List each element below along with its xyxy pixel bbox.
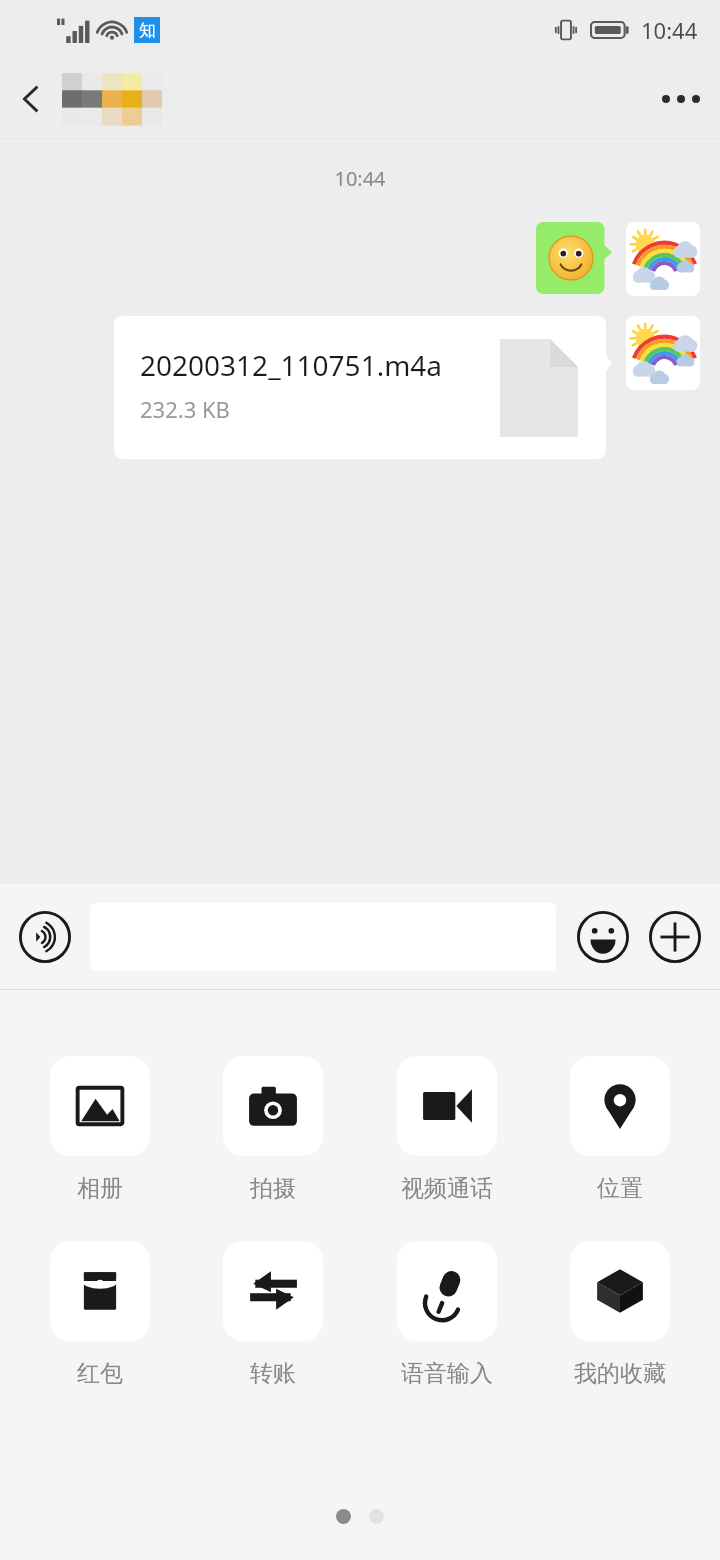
- button[interactable]: 视频通话: [373, 1056, 521, 1203]
- staticText: 拍摄: [250, 1174, 296, 1203]
- button[interactable]: 语音输入: [373, 1241, 521, 1388]
- button[interactable]: 转账: [199, 1241, 347, 1388]
- staticText: 10:44: [0, 165, 720, 192]
- staticText: 视频通话: [401, 1174, 493, 1203]
- button[interactable]: More: [644, 906, 706, 968]
- staticText: 我的收藏: [574, 1359, 666, 1388]
- staticText: 20200312_110751.m4a: [140, 346, 443, 384]
- button[interactable]: 20200312_110751.m4a: [114, 316, 612, 459]
- staticText: 语音输入: [401, 1359, 493, 1388]
- button[interactable]: Avatar: [626, 222, 700, 296]
- staticText: 转账: [250, 1359, 296, 1388]
- button[interactable]: Emoji: [572, 906, 634, 968]
- button[interactable]: [62, 73, 182, 125]
- button[interactable]: Voice input: [14, 906, 76, 968]
- staticText: 10:44: [641, 15, 698, 45]
- button[interactable]: Avatar: [626, 316, 700, 390]
- staticText: 知: [139, 20, 156, 41]
- button[interactable]: 红包: [26, 1241, 174, 1388]
- button[interactable]: More options: [642, 60, 720, 138]
- button[interactable]: 相册: [26, 1056, 174, 1203]
- button[interactable]: 位置: [546, 1056, 694, 1203]
- button[interactable]: 拍摄: [199, 1056, 347, 1203]
- button[interactable]: [536, 222, 612, 294]
- staticText: 位置: [597, 1174, 643, 1203]
- button[interactable]: Back: [0, 68, 62, 130]
- staticText: 红包: [77, 1359, 123, 1388]
- staticText: 232.3 KB: [140, 394, 230, 424]
- staticText: 相册: [77, 1174, 123, 1203]
- button[interactable]: 我的收藏: [546, 1241, 694, 1388]
